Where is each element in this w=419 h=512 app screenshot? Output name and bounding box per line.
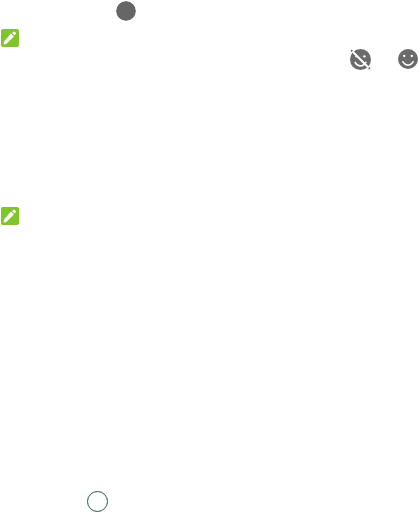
button[interactable]: Mood	[398, 49, 418, 69]
button[interactable]: Edit	[1, 207, 19, 225]
button[interactable]: Mood off	[350, 49, 371, 70]
other: Loading	[87, 491, 108, 512]
button[interactable]: Account	[116, 1, 136, 21]
button[interactable]: Edit	[1, 29, 19, 47]
